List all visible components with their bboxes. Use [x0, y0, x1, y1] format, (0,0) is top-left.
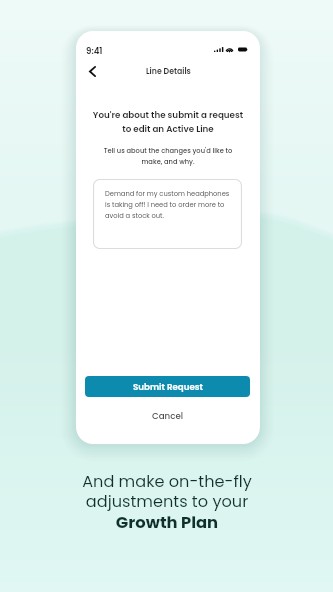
button[interactable]: Demand for my custom headphones is takin…: [93, 179, 242, 249]
button[interactable]: Back: [82, 61, 102, 81]
staticText: 9:41: [86, 45, 103, 57]
staticText: Submit Request: [133, 381, 203, 393]
staticText: You're about the submit a request to edi…: [82, 109, 254, 135]
staticText: Cancel: [152, 410, 184, 422]
staticText: Tell us about the changes you'd like to …: [82, 146, 254, 167]
staticText: Line Details: [146, 66, 191, 77]
staticText: And make on-the-fly adjustments to your …: [82, 470, 252, 534]
button[interactable]: Submit Request: [85, 376, 250, 397]
button[interactable]: Cancel: [76, 404, 260, 428]
staticText: Demand for my custom headphones is takin…: [105, 189, 230, 221]
